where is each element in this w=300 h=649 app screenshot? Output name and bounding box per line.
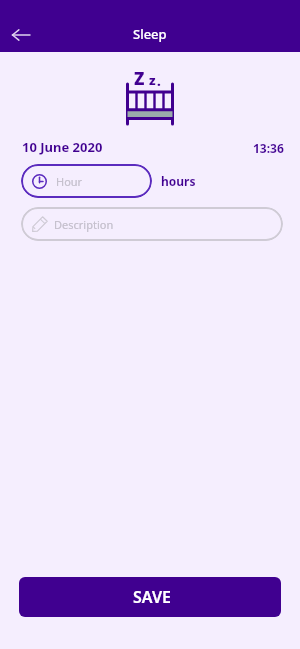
staticText: 10 June 2020	[22, 138, 103, 156]
staticText: Description	[54, 217, 114, 232]
button[interactable]: Description	[21, 207, 283, 241]
button[interactable]: Back	[6, 20, 36, 50]
button[interactable]: SAVE	[19, 577, 281, 617]
staticText: Hour	[56, 174, 83, 189]
button[interactable]: Hour	[21, 164, 152, 198]
staticText: Sleep	[133, 25, 167, 43]
staticText: z	[149, 71, 156, 89]
staticText: Z	[134, 67, 145, 90]
staticText: 13:36	[253, 140, 284, 156]
staticText: SAVE	[133, 586, 171, 608]
staticText: hours	[161, 173, 196, 189]
staticText: .	[157, 72, 161, 90]
